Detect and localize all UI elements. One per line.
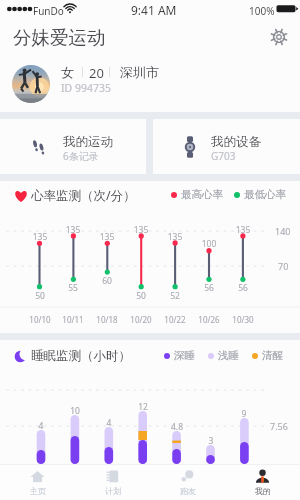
- staticText: 3: [186, 435, 236, 447]
- staticText: 4: [84, 417, 134, 429]
- staticText: 深睡: [174, 349, 195, 362]
- button[interactable]: 女: [0, 56, 300, 112]
- staticText: 我的: [255, 486, 271, 496]
- button[interactable]: 我的设备: [153, 119, 300, 174]
- staticText: 12: [118, 401, 168, 413]
- staticText: 深圳市: [120, 64, 159, 80]
- staticText: ID 994735: [61, 81, 111, 95]
- staticText: 最高心率: [181, 188, 223, 201]
- staticText: 清醒: [262, 349, 283, 362]
- staticText: 10/11: [48, 314, 98, 325]
- staticText: 10/22: [150, 314, 200, 325]
- staticText: 10/18: [82, 314, 132, 325]
- staticText: 100%: [249, 4, 275, 18]
- button[interactable]: 我的运动: [0, 119, 146, 174]
- staticText: 10/20: [116, 314, 166, 325]
- button[interactable]: 计划: [75, 464, 150, 500]
- staticText: 浅睡: [218, 349, 239, 362]
- staticText: 4.8: [152, 421, 202, 433]
- staticText: 135: [116, 224, 166, 236]
- staticText: 135: [15, 231, 65, 243]
- staticText: 我的设备: [211, 134, 261, 150]
- staticText: 主页: [30, 486, 46, 496]
- button[interactable]: 主页: [0, 464, 75, 500]
- staticText: 50: [15, 290, 65, 302]
- staticText: 心率监测（次/分）: [31, 187, 136, 204]
- staticText: 52: [150, 290, 200, 302]
- staticText: 分妹爱运动: [13, 26, 106, 49]
- staticText: 我的运动: [63, 134, 113, 150]
- staticText: 135: [150, 231, 200, 243]
- staticText: 计划: [105, 486, 121, 496]
- staticText: 7.56: [270, 420, 288, 432]
- staticText: 55: [48, 282, 98, 294]
- staticText: 135: [48, 224, 98, 236]
- staticText: 135: [218, 224, 268, 236]
- staticText: 6条记录: [63, 149, 99, 163]
- staticText: 4: [16, 420, 66, 432]
- button[interactable]: 跑友: [150, 464, 225, 500]
- staticText: 140: [275, 225, 291, 237]
- staticText: 10: [50, 405, 100, 417]
- staticText: 10/10: [15, 314, 65, 325]
- staticText: 9:41 AM: [131, 2, 177, 18]
- staticText: 最低心率: [244, 188, 286, 201]
- staticText: 135: [82, 231, 132, 243]
- staticText: 100: [184, 238, 234, 250]
- staticText: 56: [184, 282, 234, 294]
- button[interactable]: 我的: [225, 464, 300, 500]
- staticText: 20: [89, 64, 104, 82]
- staticText: 9: [219, 408, 269, 420]
- staticText: 睡眠监测（小时）: [31, 348, 131, 364]
- staticText: FunDo: [33, 4, 64, 18]
- staticText: G703: [211, 149, 236, 163]
- staticText: 10/30: [218, 314, 268, 325]
- button[interactable]: Settings: [269, 27, 289, 47]
- staticText: 女: [61, 64, 74, 80]
- staticText: 跑友: [180, 486, 196, 496]
- staticText: 56: [218, 282, 268, 294]
- staticText: 60: [82, 275, 132, 287]
- staticText: 50: [116, 290, 166, 302]
- staticText: 10/26: [184, 314, 234, 325]
- staticText: 70: [278, 260, 289, 272]
